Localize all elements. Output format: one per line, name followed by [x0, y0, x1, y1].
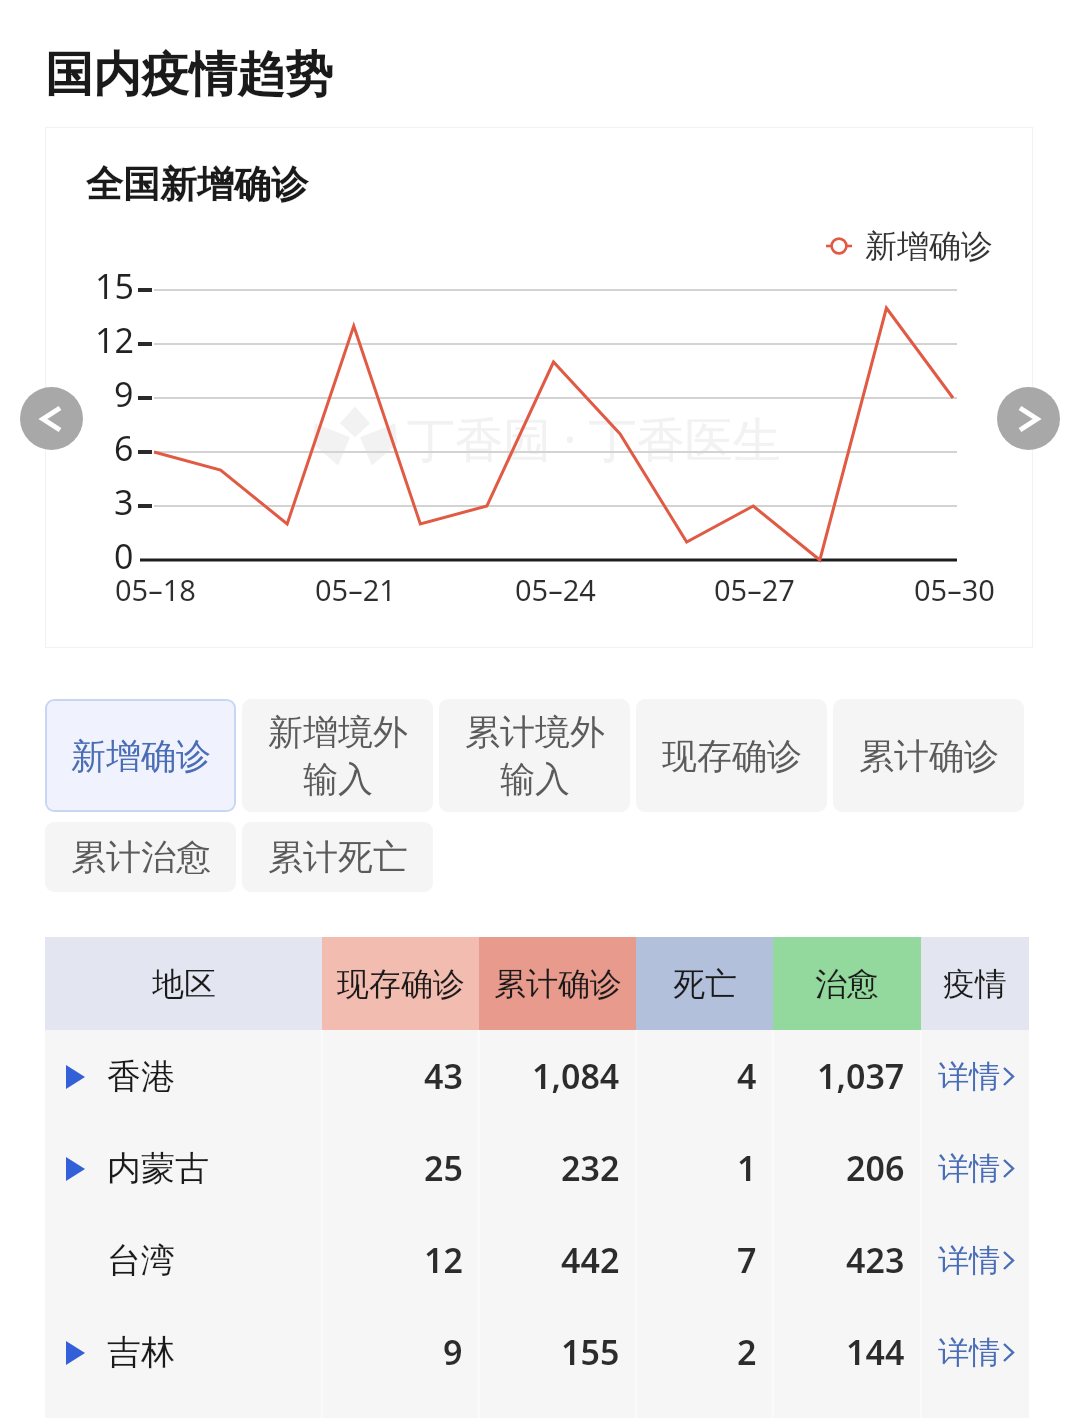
staticText: 现存确诊	[337, 964, 465, 1004]
button[interactable]: 累计治愈	[45, 822, 236, 892]
button[interactable]: Expand 吉林	[66, 1341, 85, 1365]
button[interactable]: 新增确诊	[45, 699, 236, 812]
staticText: 现存确诊	[662, 734, 802, 778]
staticText: 12	[95, 317, 134, 363]
staticText: 7	[737, 1237, 757, 1283]
staticText: 1,037	[817, 1053, 905, 1099]
staticText: 4	[737, 1053, 757, 1099]
staticText: 1	[737, 1145, 757, 1191]
button[interactable]: 累计境外 输入	[439, 699, 630, 812]
staticText: 15	[95, 263, 134, 309]
button[interactable]: 详情	[921, 1030, 1029, 1122]
staticText: 05–21	[315, 570, 396, 609]
button[interactable]: Expand 吉林	[45, 1306, 1029, 1398]
button[interactable]: Expand 内蒙古	[66, 1157, 85, 1181]
staticText: 206	[846, 1145, 905, 1191]
staticText: 丁香园 · 丁香医生	[407, 406, 781, 472]
staticText: 144	[846, 1329, 905, 1375]
staticText: 3	[114, 479, 134, 525]
button[interactable]: 详情	[921, 1122, 1029, 1214]
staticText: 全国新增确诊	[86, 161, 308, 208]
staticText: 0	[114, 533, 134, 579]
button[interactable]: Previous chart	[20, 387, 83, 450]
staticText: 43	[424, 1053, 463, 1099]
button[interactable]: 详情	[921, 1306, 1029, 1398]
staticText: 423	[846, 1237, 905, 1283]
staticText: 05–30	[914, 570, 995, 609]
staticText: 累计死亡	[268, 835, 408, 879]
staticText: 新增确诊	[71, 734, 211, 778]
staticText: 吉林	[107, 1331, 175, 1374]
staticText: 香港	[107, 1055, 175, 1098]
staticText: 12	[424, 1237, 463, 1283]
staticText: 6	[114, 425, 134, 471]
button[interactable]: 累计死亡	[242, 822, 433, 892]
staticText: 内蒙古	[107, 1147, 209, 1190]
staticText: 2	[737, 1329, 757, 1375]
staticText: 累计治愈	[71, 835, 211, 879]
staticText: 累计境外 输入	[465, 710, 605, 801]
button[interactable]: 详情	[921, 1214, 1029, 1306]
staticText: 治愈	[815, 964, 879, 1004]
button[interactable]: 台湾	[45, 1214, 1029, 1306]
button[interactable]: Expand 香港	[66, 1065, 85, 1089]
staticText: 25	[424, 1145, 463, 1191]
staticText: 详情	[938, 1241, 1000, 1280]
staticText: 232	[561, 1145, 620, 1191]
staticText: 详情	[938, 1333, 1000, 1372]
button[interactable]: 累计确诊	[833, 699, 1024, 812]
staticText: 详情	[938, 1057, 1000, 1096]
staticText: 新增境外 输入	[268, 710, 408, 801]
button[interactable]: 新增境外 输入	[242, 699, 433, 812]
staticText: 累计确诊	[494, 964, 622, 1004]
button[interactable]: Expand 内蒙古	[45, 1122, 1029, 1214]
staticText: 9	[443, 1329, 463, 1375]
staticText: 地区	[152, 964, 216, 1004]
staticText: 155	[561, 1329, 620, 1375]
button[interactable]: Next chart	[997, 387, 1060, 450]
staticText: 台湾	[107, 1239, 175, 1282]
staticText: 05–24	[515, 570, 596, 609]
staticText: 05–18	[115, 570, 196, 609]
staticText: 国内疫情趋势	[45, 45, 333, 105]
staticText: 详情	[938, 1149, 1000, 1188]
staticText: 累计确诊	[859, 734, 999, 778]
staticText: 新增确诊	[865, 226, 993, 266]
staticText: 05–27	[714, 570, 795, 609]
staticText: 1,084	[532, 1053, 620, 1099]
staticText: 442	[561, 1237, 620, 1283]
staticText: 死亡	[673, 964, 737, 1004]
staticText: 疫情	[943, 964, 1007, 1004]
button[interactable]: Expand 香港	[45, 1030, 1029, 1122]
button[interactable]: 现存确诊	[636, 699, 827, 812]
staticText: 9	[114, 371, 134, 417]
